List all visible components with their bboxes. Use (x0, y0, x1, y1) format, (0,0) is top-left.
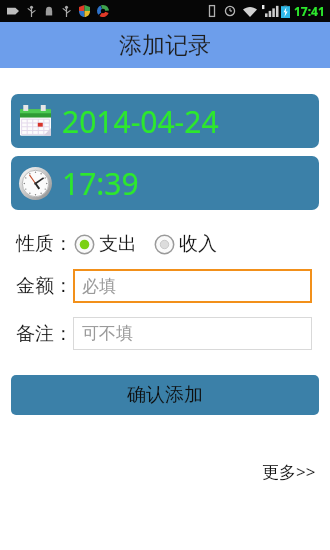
staticText: 添加记录 (119, 31, 211, 60)
staticText: 更多>> (262, 460, 316, 483)
staticText: 必填 (82, 276, 116, 297)
button[interactable]: Pick time (11, 156, 319, 210)
staticText: 性质： (16, 232, 73, 256)
staticText: 2014-04-24 (62, 101, 219, 142)
button[interactable]: 必填 (73, 269, 312, 303)
staticText: 金额： (16, 274, 73, 298)
staticText: 备注： (16, 322, 73, 346)
staticText: 17:41 (294, 3, 325, 19)
button[interactable]: 更多>> (248, 456, 330, 487)
button[interactable]: 可不填 (73, 317, 312, 350)
staticText: 17:39 (62, 163, 139, 204)
staticText: 确认添加 (127, 383, 203, 407)
staticText: 收入 (179, 232, 217, 256)
staticText: 支出 (99, 232, 137, 256)
button[interactable]: Pick date (11, 94, 319, 148)
staticText: 可不填 (82, 323, 133, 344)
button[interactable]: 支出 (73, 232, 137, 256)
button[interactable]: 收入 (153, 232, 217, 256)
button[interactable]: 确认添加 (11, 375, 319, 415)
